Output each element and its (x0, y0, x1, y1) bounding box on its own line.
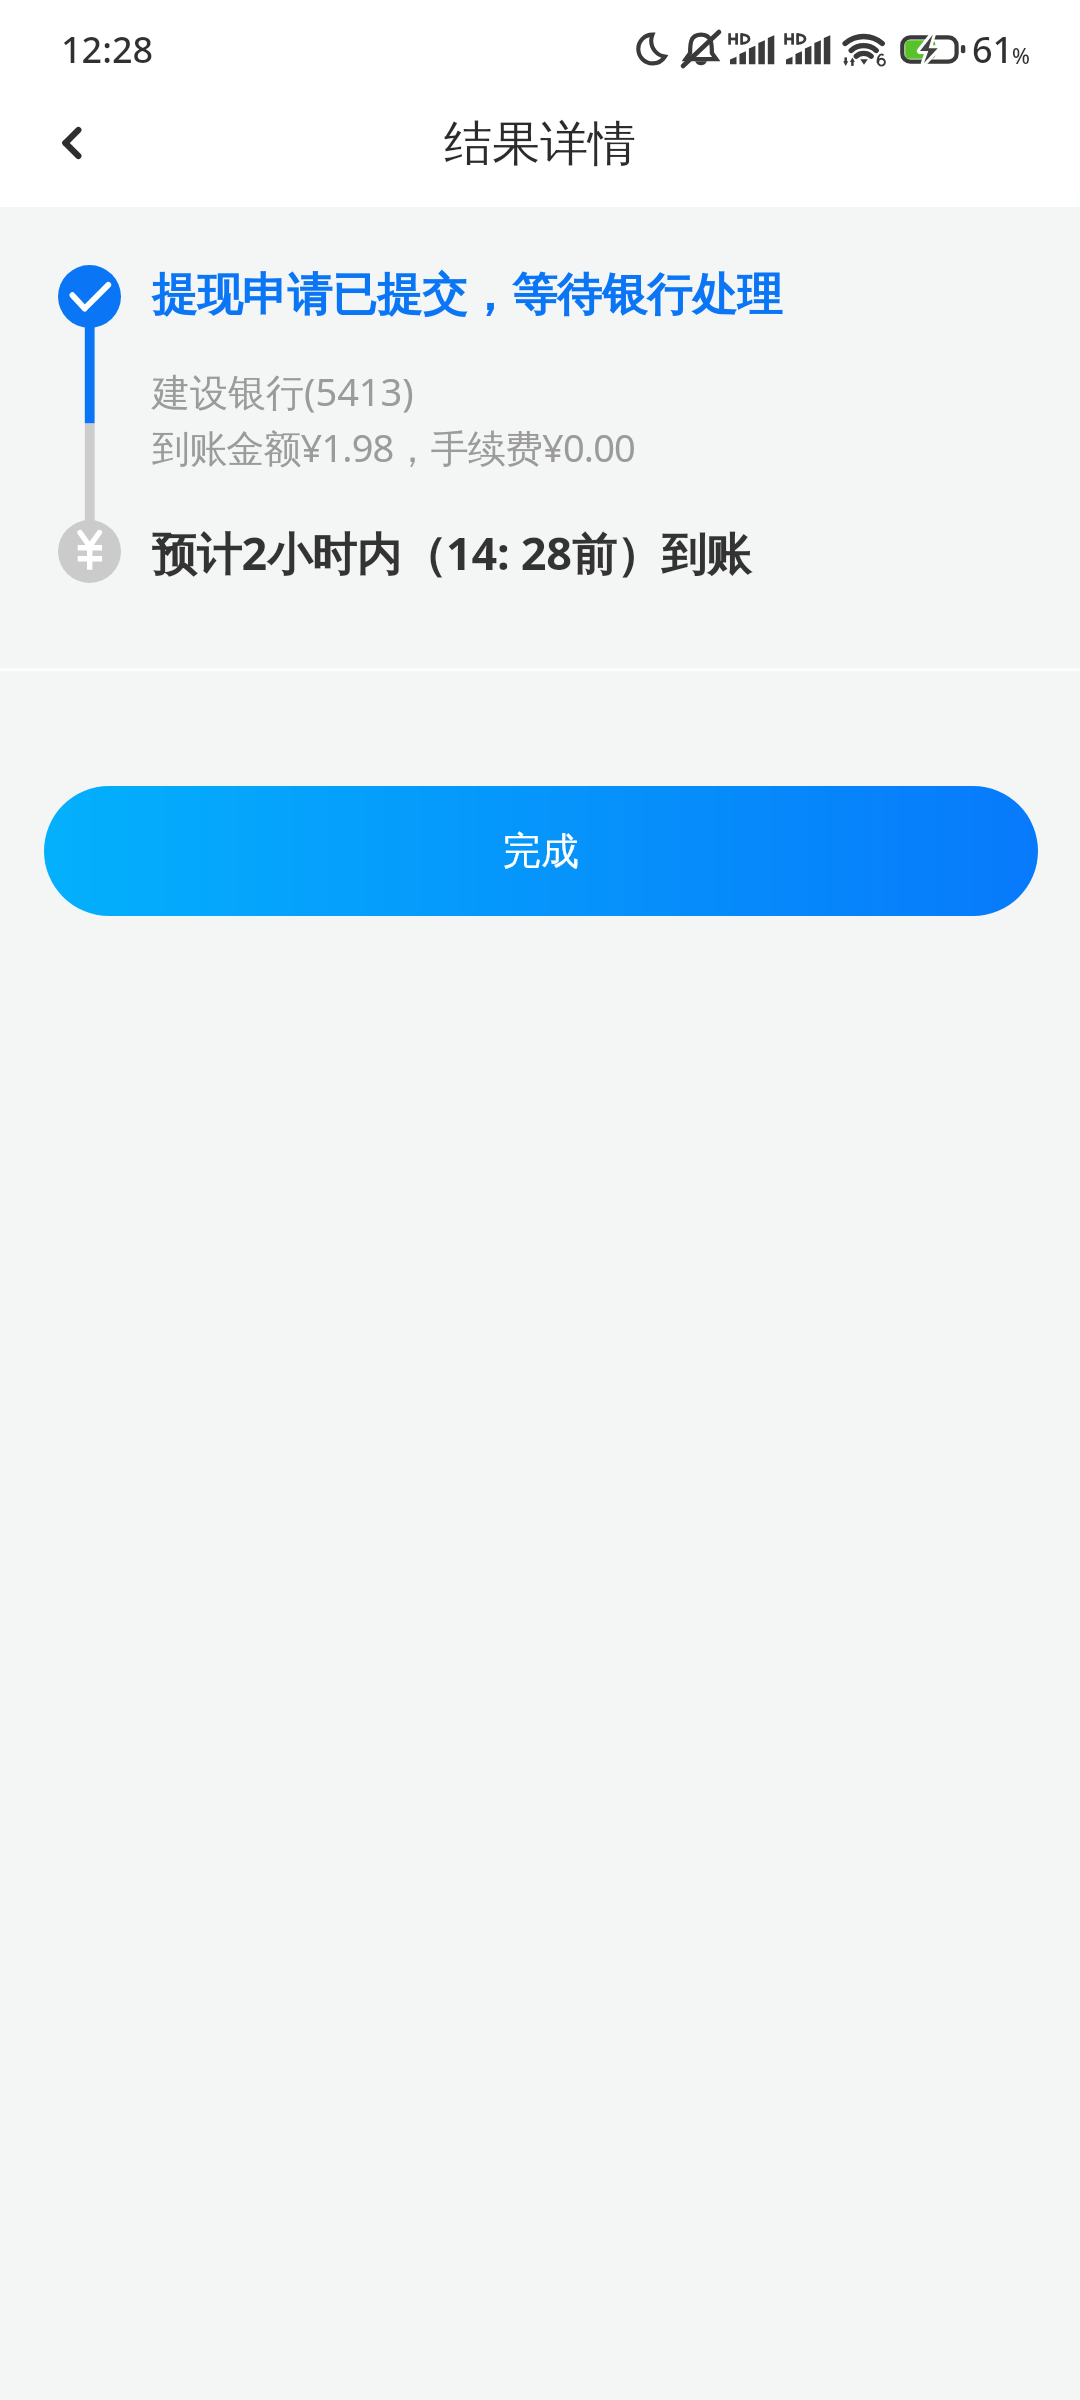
button[interactable]: Back (18, 89, 125, 196)
staticText: 12:28 (61, 25, 154, 74)
staticText: 完成 (503, 827, 579, 875)
staticText: % (1012, 42, 1030, 71)
button[interactable]: 完成 (44, 786, 1038, 916)
staticText: 到账金额¥1.98，手续费¥0.00 (152, 421, 635, 473)
staticText: 预计2小时内（14: 28前）到账 (152, 522, 751, 583)
staticText: 61 (972, 25, 1014, 74)
staticText: 建设银行(5413) (152, 365, 414, 417)
staticText: 提现申请已提交，等待银行处理 (152, 267, 782, 324)
staticText: 结果详情 (444, 114, 636, 174)
